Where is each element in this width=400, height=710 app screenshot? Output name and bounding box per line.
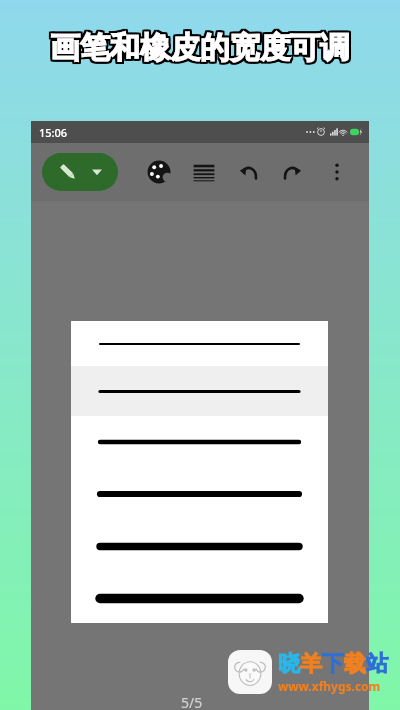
button[interactable]: Stroke width option 3 xyxy=(71,416,328,468)
staticText: 画笔和橡皮的宽度可调 xyxy=(48,30,348,68)
staticText: 画笔和橡皮的宽度可调 xyxy=(50,31,350,69)
staticText: 载 xyxy=(344,650,366,678)
staticText: 站 xyxy=(366,650,388,678)
button[interactable]: Stroke width xyxy=(186,154,222,190)
staticText: 画笔和橡皮的宽度可调 xyxy=(48,29,348,67)
staticText: 晓 xyxy=(278,650,300,678)
staticText: 画笔和橡皮的宽度可调 xyxy=(49,28,349,66)
staticText: 画笔和橡皮的宽度可调 xyxy=(50,27,350,65)
staticText: 画笔和橡皮的宽度可调 xyxy=(51,27,351,65)
button[interactable]: Stroke width option 4 xyxy=(71,468,328,520)
staticText: 画笔和橡皮的宽度可调 xyxy=(48,28,348,66)
staticText: 下 xyxy=(322,650,344,678)
staticText: 画笔和橡皮的宽度可调 xyxy=(49,27,349,65)
button[interactable]: Undo xyxy=(231,154,267,190)
staticText: 画笔和橡皮的宽度可调 xyxy=(52,30,352,68)
button[interactable]: Stroke width option 6 xyxy=(71,573,328,623)
staticText: 5/5 xyxy=(181,693,203,710)
button[interactable]: Stroke width option 1 xyxy=(71,321,328,366)
staticText: 画笔和橡皮的宽度可调 xyxy=(51,29,351,67)
staticText: 画笔和橡皮的宽度可调 xyxy=(48,27,348,65)
staticText: 画笔和橡皮的宽度可调 xyxy=(52,29,352,67)
staticText: 15:06 xyxy=(39,125,68,140)
staticText: www.xfhygs.com xyxy=(278,678,381,694)
staticText: 画笔和橡皮的宽度可调 xyxy=(49,29,349,67)
staticText: 画笔和橡皮的宽度可调 xyxy=(51,28,351,66)
button[interactable]: Stroke width option 2 xyxy=(71,366,328,416)
button[interactable]: Color palette xyxy=(141,154,177,190)
button[interactable]: Redo xyxy=(274,154,310,190)
staticText: 画笔和橡皮的宽度可调 xyxy=(52,31,352,69)
staticText: 画笔和橡皮的宽度可调 xyxy=(51,30,351,68)
staticText: 画笔和橡皮的宽度可调 xyxy=(50,29,350,67)
staticText: 画笔和橡皮的宽度可调 xyxy=(52,28,352,66)
button[interactable]: More options xyxy=(319,154,355,190)
button[interactable]: Pen tool xyxy=(42,153,118,191)
staticText: 画笔和橡皮的宽度可调 xyxy=(50,30,350,68)
staticText: 画笔和橡皮的宽度可调 xyxy=(50,28,350,66)
staticText: 画笔和橡皮的宽度可调 xyxy=(49,30,349,68)
staticText: 画笔和橡皮的宽度可调 xyxy=(48,31,348,69)
button[interactable]: Stroke width option 5 xyxy=(71,520,328,573)
staticText: 画笔和橡皮的宽度可调 xyxy=(49,31,349,69)
staticText: 画笔和橡皮的宽度可调 xyxy=(52,27,352,65)
staticText: 画笔和橡皮的宽度可调 xyxy=(51,31,351,69)
staticText: 羊 xyxy=(300,650,322,678)
